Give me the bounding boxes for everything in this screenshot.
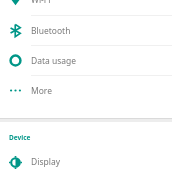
other: Display bbox=[0, 152, 31, 172]
staticText: Device bbox=[9, 133, 31, 142]
button[interactable]: Bluetooth bbox=[0, 16, 172, 45]
other: More bbox=[0, 76, 31, 105]
button[interactable]: Data usage bbox=[0, 46, 172, 75]
staticText: Data usage bbox=[31, 55, 77, 67]
button[interactable]: Display bbox=[0, 152, 172, 172]
button[interactable]: Wi-Fi bbox=[0, 0, 172, 15]
staticText: Bluetooth bbox=[31, 25, 71, 37]
other: Bluetooth bbox=[0, 16, 31, 45]
other: Wi-Fi bbox=[0, 0, 31, 15]
staticText: Display bbox=[31, 156, 60, 168]
button[interactable]: More bbox=[0, 76, 172, 105]
staticText: Wi-Fi bbox=[31, 0, 51, 6]
staticText: More bbox=[31, 85, 52, 97]
other: Data usage bbox=[0, 46, 31, 75]
